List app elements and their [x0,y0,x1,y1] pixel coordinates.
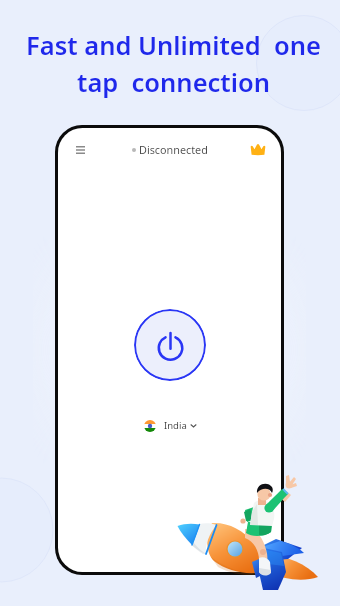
staticText: Fast and Unlimited one tap connection [26,28,321,100]
button[interactable]: Menu [70,139,91,160]
staticText: India [164,419,187,432]
button[interactable]: Connect [134,309,206,381]
button[interactable]: Premium [247,138,268,159]
staticText: Disconnected [139,142,208,157]
button[interactable]: Disconnected [132,142,208,157]
button[interactable]: India [140,417,201,434]
